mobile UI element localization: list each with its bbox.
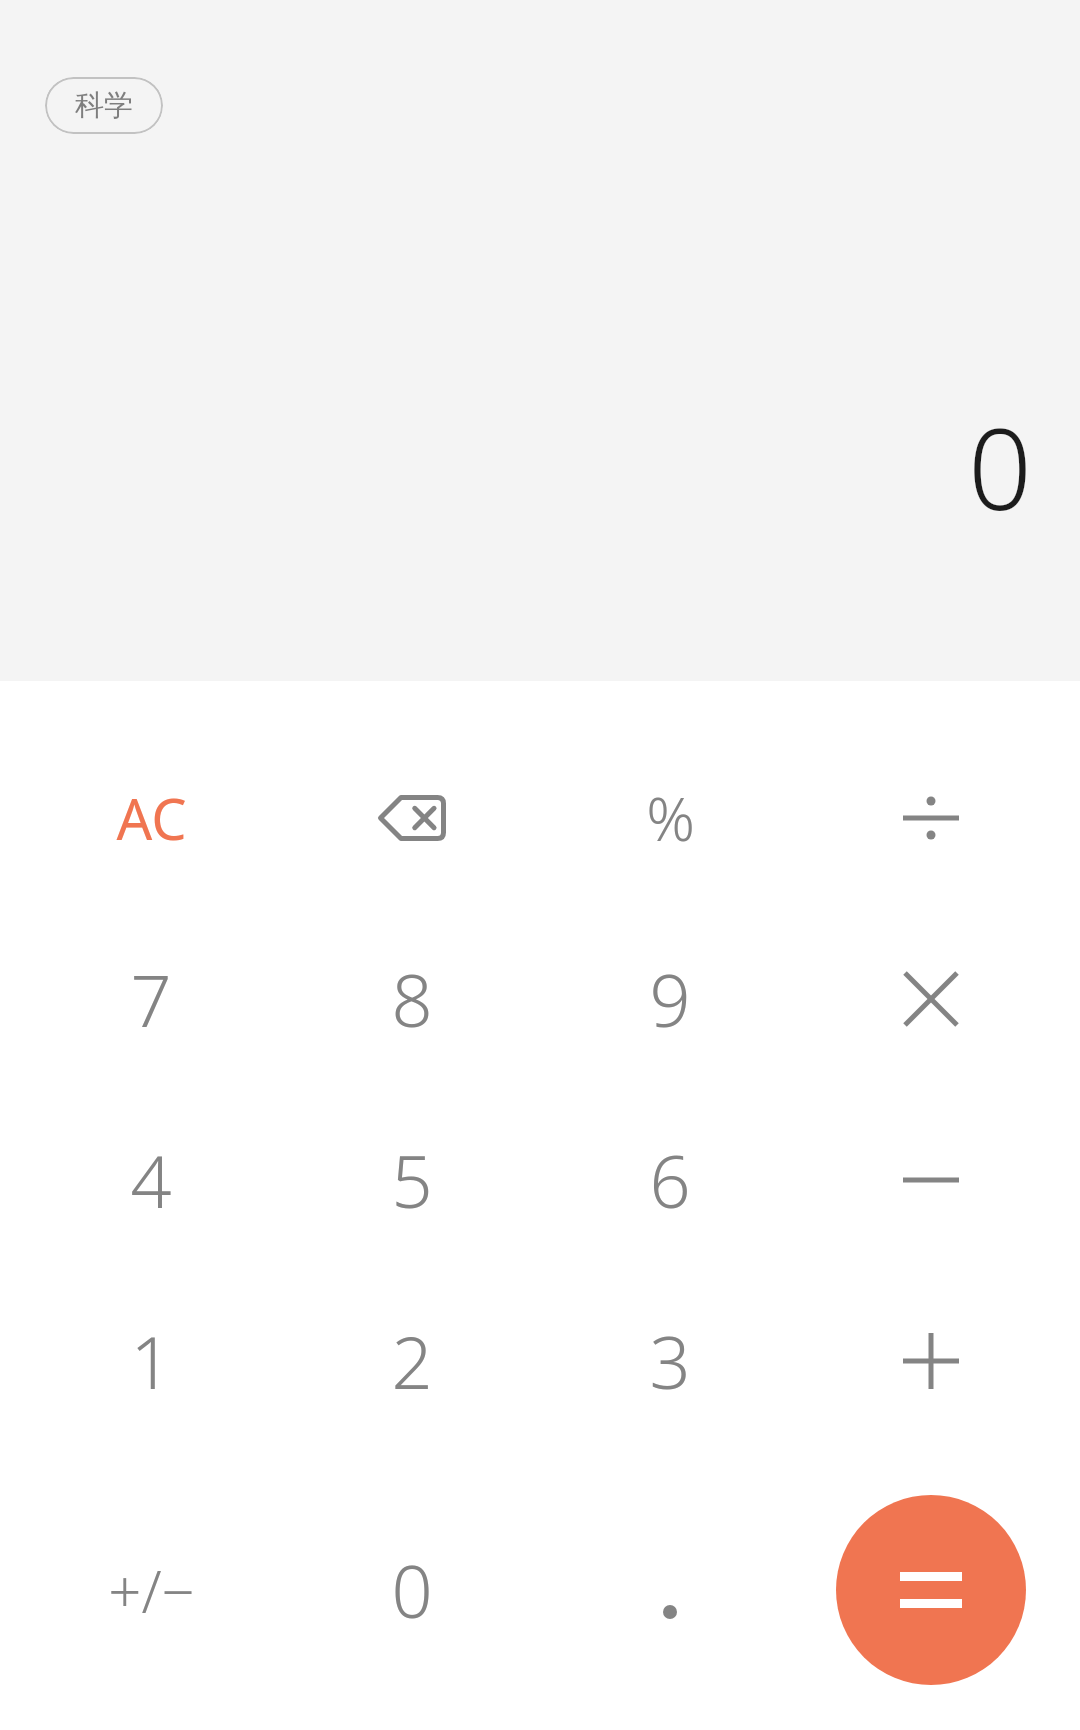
staticText: 科学 bbox=[75, 87, 133, 124]
button[interactable]: Multiply bbox=[841, 914, 1021, 1084]
button[interactable]: 8 bbox=[322, 914, 502, 1084]
staticText: 1 bbox=[130, 1312, 172, 1410]
staticText: 8 bbox=[391, 950, 433, 1048]
staticText: 4 bbox=[130, 1131, 172, 1229]
button[interactable]: % bbox=[580, 733, 760, 903]
button[interactable]: Minus bbox=[841, 1095, 1021, 1265]
staticText: +/− bbox=[108, 1551, 195, 1630]
staticText: 2 bbox=[391, 1312, 433, 1410]
staticText: 5 bbox=[391, 1131, 433, 1229]
button[interactable]: 4 bbox=[61, 1095, 241, 1265]
button[interactable]: 2 bbox=[322, 1276, 502, 1446]
button[interactable]: AC bbox=[61, 733, 241, 903]
button[interactable]: 6 bbox=[580, 1095, 760, 1265]
button[interactable]: 3 bbox=[580, 1276, 760, 1446]
staticText: 0 bbox=[968, 390, 1032, 543]
staticText: 7 bbox=[130, 950, 172, 1048]
staticText: 9 bbox=[649, 950, 691, 1048]
button[interactable]: 5 bbox=[322, 1095, 502, 1265]
button[interactable]: Plus bbox=[841, 1276, 1021, 1446]
button[interactable]: Equals bbox=[836, 1495, 1026, 1685]
button[interactable]: Backspace bbox=[322, 738, 502, 898]
staticText: % bbox=[646, 777, 695, 859]
button[interactable]: 1 bbox=[61, 1276, 241, 1446]
button[interactable]: Divide bbox=[841, 738, 1021, 898]
button[interactable]: 9 bbox=[580, 914, 760, 1084]
staticText: 6 bbox=[649, 1131, 691, 1229]
button[interactable]: Decimal point bbox=[580, 1542, 760, 1682]
staticText: 3 bbox=[649, 1312, 691, 1410]
button[interactable]: +/− bbox=[61, 1505, 241, 1675]
staticText: AC bbox=[116, 780, 187, 856]
button[interactable]: 科学 bbox=[45, 77, 163, 134]
button[interactable]: 0 bbox=[322, 1505, 502, 1675]
staticText: 0 bbox=[391, 1541, 433, 1639]
button[interactable]: 7 bbox=[61, 914, 241, 1084]
